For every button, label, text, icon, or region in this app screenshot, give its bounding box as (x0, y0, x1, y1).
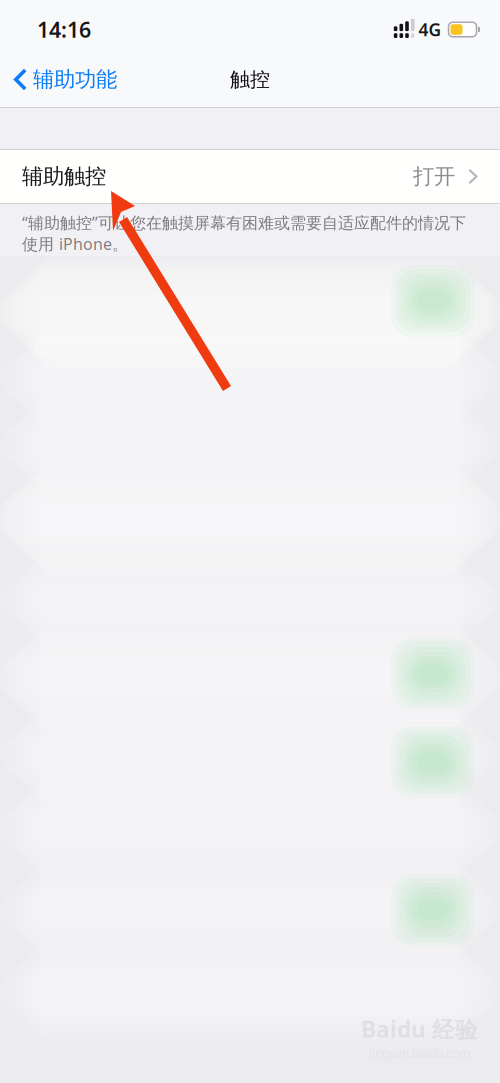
staticText: 辅助功能 (33, 66, 117, 93)
staticText: 4G (418, 18, 441, 41)
button[interactable]: 辅助功能 (0, 52, 129, 107)
staticText: “辅助触控”可让您在触摸屏幕有困难或需要自适应配件的情况下使用 iPhone。 (22, 212, 466, 254)
staticText: Baidu 经验 (361, 1014, 478, 1044)
staticText: jingyan.baidu.com (369, 1045, 470, 1061)
staticText: 触控 (230, 67, 270, 92)
staticText: 打开 (413, 163, 455, 190)
staticText: 14:16 (37, 15, 91, 44)
staticText: 辅助触控 (22, 163, 106, 190)
button[interactable]: 辅助触控 (0, 150, 500, 203)
